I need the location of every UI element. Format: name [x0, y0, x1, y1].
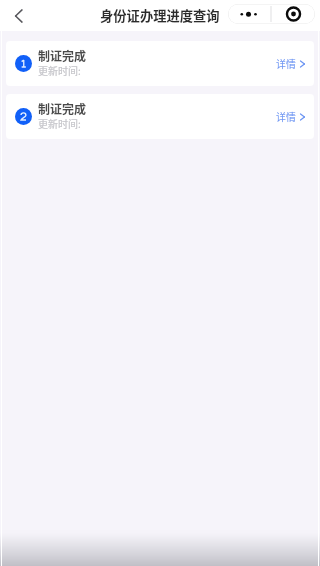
- button[interactable]: 详情: [276, 41, 305, 86]
- staticText: 制证完成: [38, 47, 87, 64]
- staticText: 制证完成: [38, 100, 87, 117]
- staticText: 详情: [276, 57, 296, 71]
- staticText: 详情: [276, 110, 296, 124]
- button[interactable]: Close mini program: [272, 4, 315, 24]
- button[interactable]: More options: [228, 4, 272, 24]
- button[interactable]: Back: [6, 3, 32, 29]
- button[interactable]: 制证完成: [6, 41, 314, 86]
- staticText: 身份证办理进度查询: [100, 6, 220, 25]
- button[interactable]: 详情: [276, 94, 305, 139]
- staticText: 更新时间:: [38, 116, 81, 130]
- staticText: 更新时间:: [38, 63, 81, 77]
- button[interactable]: 制证完成: [6, 94, 314, 139]
